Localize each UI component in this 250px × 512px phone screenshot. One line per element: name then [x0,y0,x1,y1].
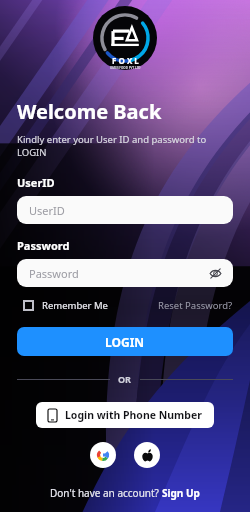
button[interactable]: Sign in with Apple [134,442,160,468]
staticText: Don't have an account? [50,486,162,500]
staticText: UserID [29,203,65,218]
button[interactable]: UserID [17,196,233,224]
staticText: Password [29,266,79,281]
other: Toggle password visibility [208,266,222,280]
staticText: F O X L [112,55,139,66]
staticText: Login with Phone Number [65,408,202,422]
staticText: Welcome Back [17,98,162,125]
staticText: OR [118,373,132,385]
staticText: Kindly enter your User ID and password t… [17,133,233,159]
button[interactable]: Sign in with Google [90,442,116,468]
staticText: UserID [17,175,55,190]
staticText: LOGIN [105,334,145,350]
staticText: Sign Up [162,486,200,500]
staticText: OMES FOOD PVT LTD [110,66,141,70]
button[interactable]: Remember Me [17,297,108,314]
staticText: Remember Me [42,299,108,312]
button[interactable]: Password [17,259,233,287]
staticText: Password [17,238,70,253]
button[interactable]: Don't have an account? [17,486,233,500]
button[interactable]: Login with Phone Number [36,402,214,428]
button[interactable]: Reset Password? [158,299,233,312]
button[interactable]: LOGIN [17,327,233,356]
